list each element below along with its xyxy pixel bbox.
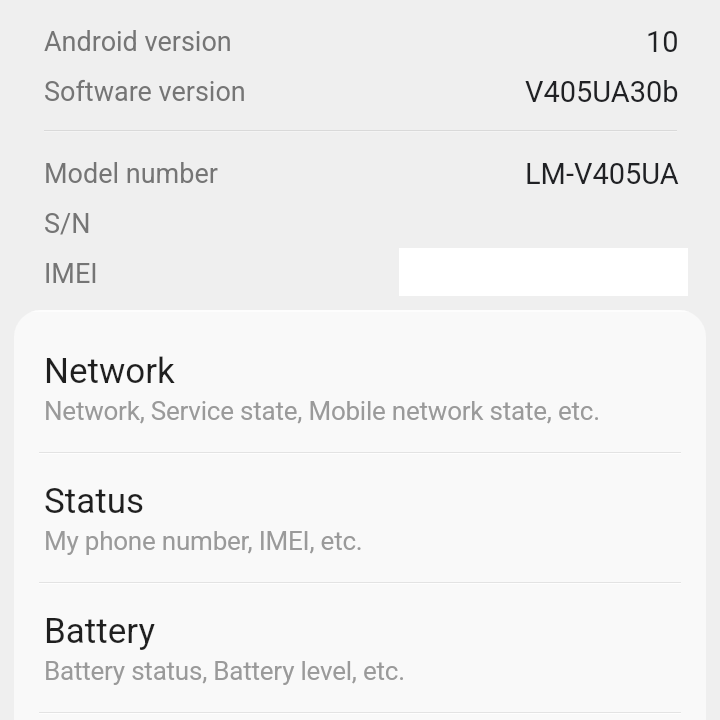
button[interactable]: Model number xyxy=(0,156,720,192)
staticText: IMEI xyxy=(44,258,98,290)
button[interactable]: Status xyxy=(14,441,706,571)
staticText: S/N xyxy=(44,208,91,240)
button[interactable]: Software version xyxy=(0,74,720,110)
staticText: Battery xyxy=(44,611,156,652)
staticText: Model number xyxy=(44,158,218,190)
staticText: Android version xyxy=(44,26,232,58)
staticText: Status xyxy=(44,481,145,522)
button[interactable]: Android version xyxy=(0,24,720,60)
button[interactable]: Network xyxy=(14,311,706,441)
staticText: My phone number, IMEI, etc. xyxy=(44,526,363,556)
staticText: Network xyxy=(44,351,175,392)
staticText: V405UA30b xyxy=(525,75,679,109)
staticText: Software version xyxy=(44,76,246,108)
staticText: Network, Service state, Mobile network s… xyxy=(44,396,600,426)
staticText: 10 xyxy=(646,25,679,59)
staticText: LM-V405UA xyxy=(525,157,679,191)
button[interactable]: S/N xyxy=(0,206,720,242)
staticText: Battery status, Battery level, etc. xyxy=(44,656,405,686)
button[interactable]: Battery xyxy=(14,571,706,701)
button[interactable]: IMEI xyxy=(0,256,720,292)
